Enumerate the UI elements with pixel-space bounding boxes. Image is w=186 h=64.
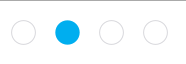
button[interactable]: Page 1 [11, 20, 36, 45]
button[interactable]: Page 4 [143, 20, 168, 45]
button[interactable]: Page 3 [99, 20, 124, 45]
button[interactable]: Page 2, current page [55, 20, 80, 45]
